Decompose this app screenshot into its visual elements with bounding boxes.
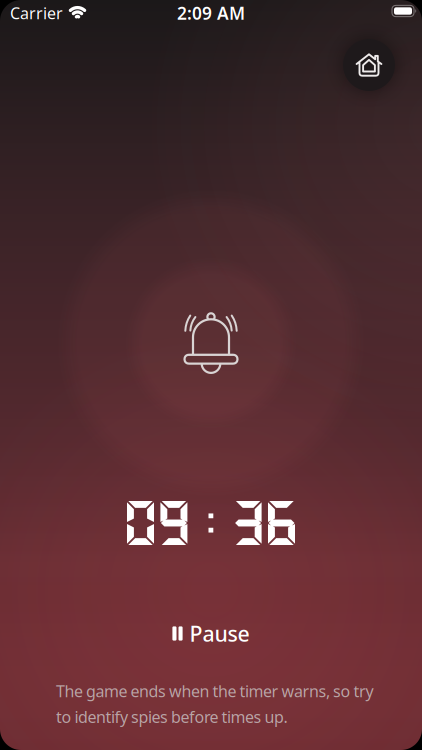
staticText: 2:09 AM bbox=[177, 1, 245, 24]
staticText: Carrier bbox=[10, 2, 63, 24]
staticText: Pause bbox=[190, 619, 250, 648]
button[interactable]: Home bbox=[343, 39, 395, 91]
staticText: The game ends when the timer warns, so t… bbox=[56, 680, 373, 702]
button[interactable]: Pause bbox=[172, 619, 250, 648]
staticText: to identify spies before times up. bbox=[56, 706, 287, 727]
